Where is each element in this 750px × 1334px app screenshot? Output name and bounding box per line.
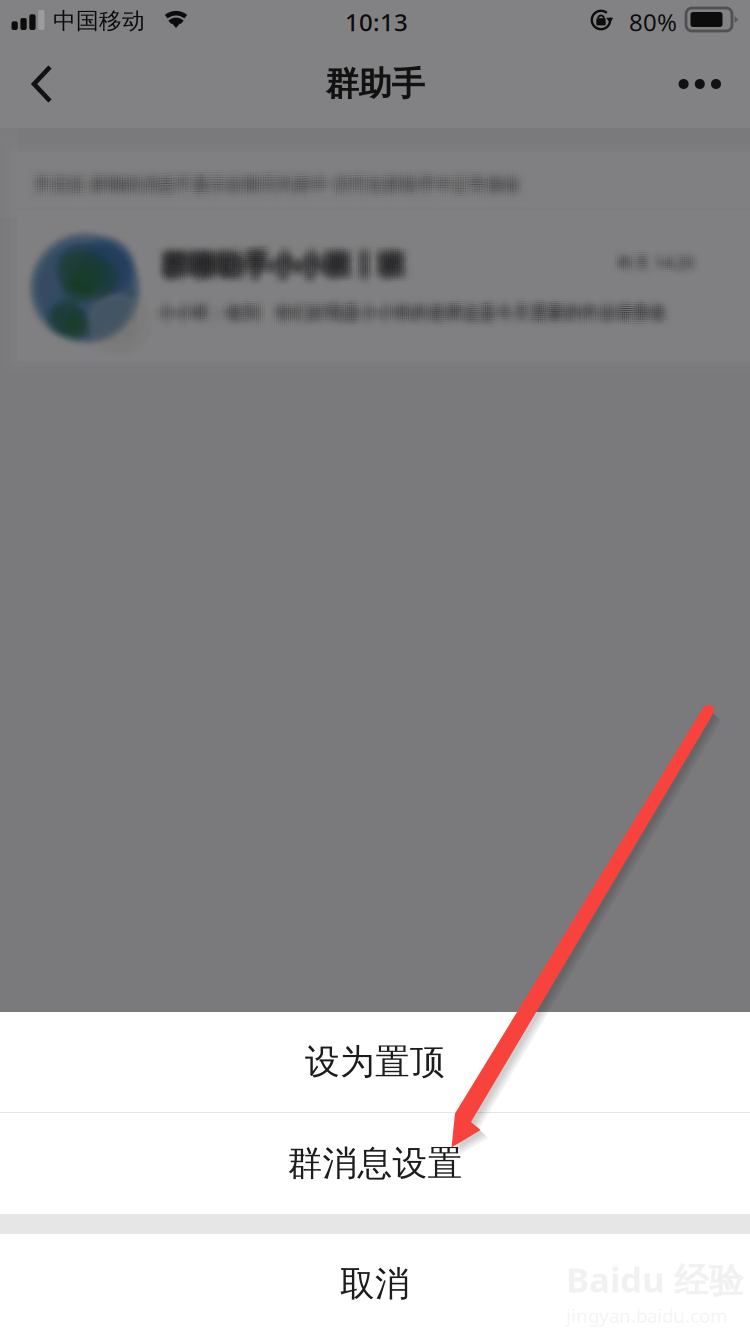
staticText: 小小班：收到 你们好我是小小班的老师这是今天需要的作业请查收 <box>162 298 670 319</box>
staticText: 群聊助手小小班丨班 <box>158 249 401 282</box>
staticText: 开启后 群聊的消息不显示在聊天列表中 仍可在群助手中正常接收 <box>41 169 527 190</box>
button[interactable]: 取消 <box>0 1234 750 1334</box>
staticText: 开启后 群聊的消息不显示在聊天列表中 仍可在群助手中正常接收 <box>27 172 513 193</box>
staticText: 小小班：收到 你们好我是小小班的老师这是今天需要的作业请查收 <box>160 302 668 323</box>
staticText: 开启后 群聊的消息不显示在聊天列表中 仍可在群助手中正常接收 <box>36 179 522 200</box>
staticText: 昨天 14:20 <box>612 248 692 269</box>
staticText: 昨天 14:20 <box>614 244 694 265</box>
staticText: 群聊助手小小班丨班 <box>166 258 409 291</box>
staticText: 开启后 群聊的消息不显示在聊天列表中 仍可在群助手中正常接收 <box>39 179 525 200</box>
staticText: 昨天 14:20 <box>614 248 694 269</box>
staticText: 小小班：收到 你们好我是小小班的老师这是今天需要的作业请查收 <box>158 294 666 315</box>
staticText: 小小班：收到 你们好我是小小班的老师这是今天需要的作业请查收 <box>162 296 670 317</box>
staticText: 开启后 群聊的消息不显示在聊天列表中 仍可在群助手中正常接收 <box>32 184 518 205</box>
staticText: 开启后 群聊的消息不显示在聊天列表中 仍可在群助手中正常接收 <box>39 181 525 202</box>
staticText: 昨天 14:20 <box>610 248 690 269</box>
staticText: 开启后 群聊的消息不显示在聊天列表中 仍可在群助手中正常接收 <box>32 167 518 188</box>
staticText: 群聊助手小小班丨班 <box>160 242 403 275</box>
staticText: 开启后 群聊的消息不显示在聊天列表中 仍可在群助手中正常接收 <box>44 167 530 188</box>
staticText: 开启后 群聊的消息不显示在聊天列表中 仍可在群助手中正常接收 <box>27 179 513 200</box>
staticText: 昨天 14:20 <box>616 252 696 273</box>
staticText: 昨天 14:20 <box>614 260 694 281</box>
staticText: 小小班：收到 你们好我是小小班的老师这是今天需要的作业请查收 <box>160 296 668 317</box>
staticText: 昨天 14:20 <box>612 256 692 277</box>
staticText: 开启后 群聊的消息不显示在聊天列表中 仍可在群助手中正常接收 <box>44 176 530 198</box>
staticText: 开启后 群聊的消息不显示在聊天列表中 仍可在群助手中正常接收 <box>29 164 515 186</box>
staticText: 开启后 群聊的消息不显示在聊天列表中 仍可在群助手中正常接收 <box>44 169 530 190</box>
staticText: 昨天 14:20 <box>616 260 696 281</box>
staticText: 群聊助手小小班丨班 <box>164 249 407 282</box>
staticText: 昨天 14:20 <box>626 254 706 275</box>
staticText: 开启后 群聊的消息不显示在聊天列表中 仍可在群助手中正常接收 <box>41 172 527 193</box>
staticText: 昨天 14:20 <box>612 244 692 265</box>
staticText: 昨天 14:20 <box>612 260 692 281</box>
staticText: 小小班：收到 你们好我是小小班的老师这是今天需要的作业请查收 <box>166 306 674 327</box>
staticText: 小小班：收到 你们好我是小小班的老师这是今天需要的作业请查收 <box>158 304 666 325</box>
staticText: 小小班：收到 你们好我是小小班的老师这是今天需要的作业请查收 <box>164 300 672 321</box>
staticText: 小小班：收到 你们好我是小小班的老师这是今天需要的作业请查收 <box>164 306 672 327</box>
staticText: 开启后 群聊的消息不显示在聊天列表中 仍可在群助手中正常接收 <box>34 179 520 200</box>
staticText: 开启后 群聊的消息不显示在聊天列表中 仍可在群助手中正常接收 <box>24 179 510 200</box>
staticText: 昨天 14:20 <box>616 244 696 265</box>
staticText: 昨天 14:20 <box>614 256 694 277</box>
staticText: 群聊助手小小班丨班 <box>162 251 405 284</box>
staticText: 群聊助手小小班丨班 <box>164 240 407 273</box>
staticText: 群消息设置 <box>287 1142 462 1185</box>
staticText: 昨天 14:20 <box>618 244 698 265</box>
staticText: 开启后 群聊的消息不显示在聊天列表中 仍可在群助手中正常接收 <box>39 174 525 195</box>
staticText: 群聊助手小小班丨班 <box>160 258 403 291</box>
staticText: 开启后 群聊的消息不显示在聊天列表中 仍可在群助手中正常接收 <box>44 181 530 202</box>
staticText: 开启后 群聊的消息不显示在聊天列表中 仍可在群助手中正常接收 <box>24 164 510 186</box>
staticText: 小小班：收到 你们好我是小小班的老师这是今天需要的作业请查收 <box>154 302 662 323</box>
staticText: 昨天 14:20 <box>618 250 698 271</box>
button[interactable]: More <box>647 45 750 123</box>
staticText: 小小班：收到 你们好我是小小班的老师这是今天需要的作业请查收 <box>166 300 674 321</box>
staticText: 昨天 14:20 <box>616 248 696 269</box>
staticText: 昨天 14:20 <box>610 244 690 265</box>
staticText: 开启后 群聊的消息不显示在聊天列表中 仍可在群助手中正常接收 <box>24 176 510 198</box>
staticText: 群聊助手小小班丨班 <box>164 253 407 286</box>
staticText: 群聊助手小小班丨班 <box>164 258 407 291</box>
staticText: 小小班：收到 你们好我是小小班的老师这是今天需要的作业请查收 <box>164 296 672 317</box>
staticText: 小小班：收到 你们好我是小小班的老师这是今天需要的作业请查收 <box>160 300 668 321</box>
staticText: 群聊助手小小班丨班 <box>162 249 405 282</box>
staticText: 小小班：收到 你们好我是小小班的老师这是今天需要的作业请查收 <box>162 302 670 323</box>
staticText: 群聊助手小小班丨班 <box>162 253 405 286</box>
staticText: 小小班：收到 你们好我是小小班的老师这是今天需要的作业请查收 <box>154 308 662 330</box>
staticText: 群聊助手小小班丨班 <box>164 242 407 275</box>
staticText: 开启后 群聊的消息不显示在聊天列表中 仍可在群助手中正常接收 <box>36 181 522 202</box>
staticText: 群聊助手小小班丨班 <box>169 256 412 288</box>
staticText: 昨天 14:20 <box>622 258 702 279</box>
staticText: 开启后 群聊的消息不显示在聊天列表中 仍可在群助手中正常接收 <box>32 176 518 198</box>
staticText: 小小班：收到 你们好我是小小班的老师这是今天需要的作业请查收 <box>156 304 664 325</box>
staticText: 昨天 14:20 <box>626 258 706 279</box>
staticText: 群聊助手小小班丨班 <box>158 251 401 284</box>
staticText: 群聊助手小小班丨班 <box>171 247 414 280</box>
staticText: 昨天 14:20 <box>618 260 698 281</box>
staticText: 群聊助手小小班丨班 <box>160 256 403 288</box>
staticText: 小小班：收到 你们好我是小小班的老师这是今天需要的作业请查收 <box>166 308 674 330</box>
staticText: 开启后 群聊的消息不显示在聊天列表中 仍可在群助手中正常接收 <box>39 184 525 205</box>
staticText: 10:13 <box>345 6 408 38</box>
staticText: 小小班：收到 你们好我是小小班的老师这是今天需要的作业请查收 <box>156 298 664 319</box>
staticText: 昨天 14:20 <box>620 254 700 275</box>
staticText: 昨天 14:20 <box>618 248 698 269</box>
staticText: 群聊助手小小班丨班 <box>155 253 398 286</box>
staticText: 小小班：收到 你们好我是小小班的老师这是今天需要的作业请查收 <box>162 308 670 330</box>
staticText: 小小班：收到 你们好我是小小班的老师这是今天需要的作业请查收 <box>160 306 668 327</box>
staticText: 群聊助手小小班丨班 <box>153 249 396 282</box>
staticText: 群聊助手小小班丨班 <box>169 247 412 280</box>
staticText: 开启后 群聊的消息不显示在聊天列表中 仍可在群助手中正常接收 <box>39 164 525 186</box>
button[interactable]: Back <box>0 40 80 128</box>
staticText: 群聊助手小小班丨班 <box>164 256 407 288</box>
staticText: 小小班：收到 你们好我是小小班的老师这是今天需要的作业请查收 <box>166 304 674 325</box>
staticText: 群聊助手小小班丨班 <box>153 240 396 273</box>
button[interactable]: 设为置顶 <box>0 1012 750 1112</box>
button[interactable]: 群消息设置 <box>0 1113 750 1214</box>
staticText: 昨天 14:20 <box>610 254 690 275</box>
staticText: 群聊助手小小班丨班 <box>155 249 398 282</box>
staticText: 群聊助手小小班丨班 <box>158 247 401 280</box>
staticText: 开启后 群聊的消息不显示在聊天列表中 仍可在群助手中正常接收 <box>36 167 522 188</box>
staticText: 小小班：收到 你们好我是小小班的老师这是今天需要的作业请查收 <box>150 310 658 332</box>
staticText: 昨天 14:20 <box>626 260 706 281</box>
